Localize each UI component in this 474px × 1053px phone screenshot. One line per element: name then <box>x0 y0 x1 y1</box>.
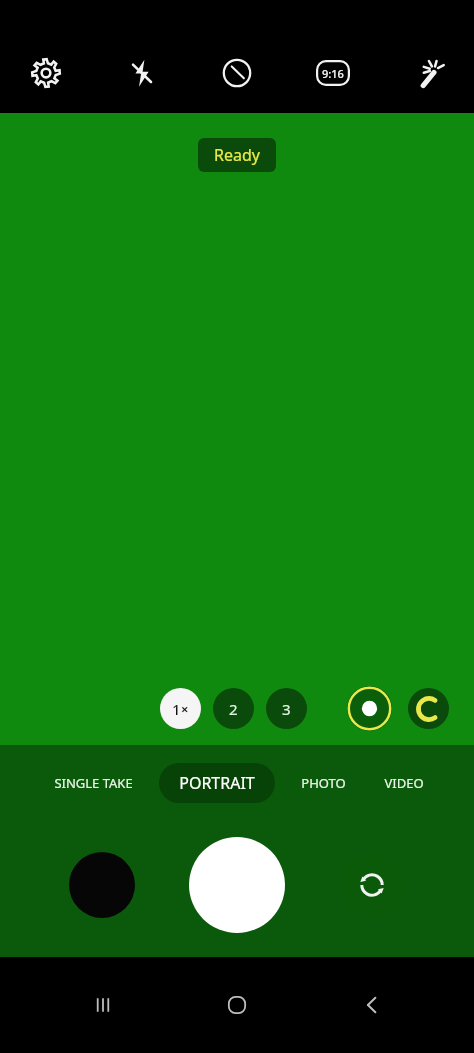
button[interactable]: Timer <box>211 47 263 99</box>
staticText: 2 <box>229 699 238 719</box>
staticText: 1 <box>172 699 181 719</box>
staticText: 3 <box>282 699 291 719</box>
button[interactable]: Settings <box>20 47 72 99</box>
staticText: SINGLE TAKE <box>54 774 133 792</box>
button[interactable]: Effects <box>402 47 454 99</box>
button[interactable]: PHOTO <box>297 768 350 798</box>
button[interactable]: Take picture <box>189 837 285 933</box>
button[interactable]: VIDEO <box>380 768 428 798</box>
button[interactable]: Recent apps <box>71 973 135 1037</box>
button[interactable]: 3 <box>266 688 307 729</box>
button[interactable]: SINGLE TAKE <box>50 768 137 798</box>
staticText: Ready <box>214 144 260 166</box>
staticText: PHOTO <box>301 774 346 792</box>
button[interactable]: Flash off <box>116 47 168 99</box>
button[interactable]: 2 <box>213 688 254 729</box>
button[interactable]: Back <box>340 973 404 1037</box>
staticText: × <box>181 700 189 718</box>
button[interactable]: Home <box>205 973 269 1037</box>
button[interactable]: Aspect ratio 9 by 16 <box>307 47 359 99</box>
button[interactable]: 1 <box>160 688 201 729</box>
button[interactable]: Switch camera <box>339 852 405 918</box>
button[interactable]: Ready <box>198 138 276 172</box>
staticText: VIDEO <box>384 774 424 792</box>
button[interactable]: Bokeh effect intensity <box>347 686 392 731</box>
button[interactable]: PORTRAIT <box>159 763 275 803</box>
staticText: PORTRAIT <box>179 772 255 794</box>
button[interactable]: Gallery <box>69 852 135 918</box>
staticText: 9:16 <box>322 66 344 81</box>
button[interactable]: Night mode <box>408 688 449 729</box>
